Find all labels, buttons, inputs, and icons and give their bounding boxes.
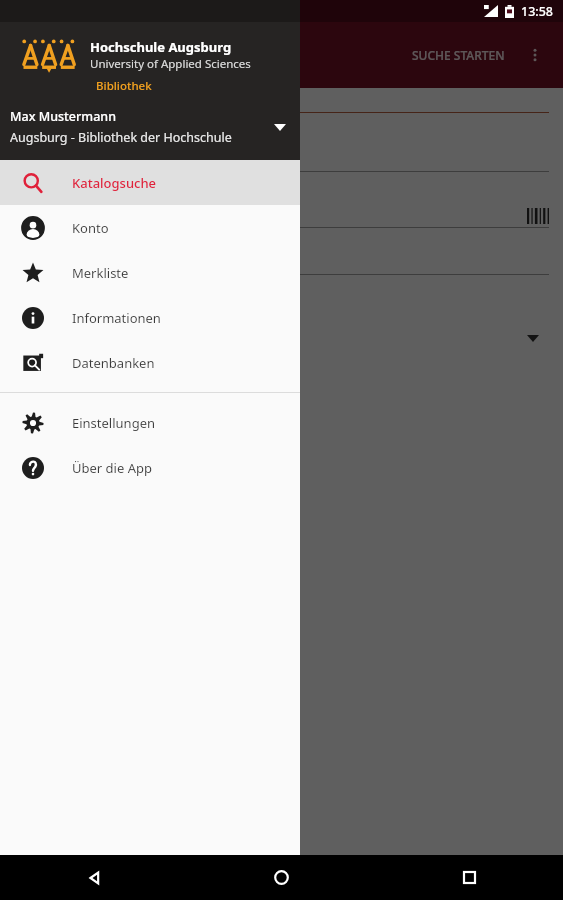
button[interactable]: Back [0, 855, 187, 900]
staticText: Informationen [72, 309, 161, 327]
button[interactable]: Einstellungen [0, 400, 300, 445]
button[interactable]: SUCHE STARTEN [402, 39, 515, 71]
button[interactable]: Merkliste [0, 250, 300, 295]
staticText: Max Mustermann [10, 108, 116, 125]
staticText: University of Applied Sciences [90, 56, 251, 72]
staticText: Bibliothek der Hochschule Augsburg [12, 59, 201, 74]
staticText: Einstellungen [72, 414, 156, 432]
staticText: Datenbanken [72, 354, 155, 372]
staticText: Katalogsuche [72, 174, 157, 192]
button[interactable]: More options [515, 35, 555, 75]
staticText: Konto [72, 219, 109, 237]
staticText: Bibliothek [96, 78, 152, 94]
button[interactable]: Datenbanken [0, 340, 300, 385]
staticText: Hochschule Augsburg [12, 37, 170, 57]
button[interactable]: Konto [0, 205, 300, 250]
button[interactable]: Katalogsuche [0, 160, 300, 205]
button[interactable]: Max Mustermann [0, 104, 300, 160]
staticText: SUCHE STARTEN [412, 47, 505, 63]
button[interactable]: Über die App [0, 445, 300, 490]
button[interactable]: Informationen [0, 295, 300, 340]
staticText: Hochschule Augsburg [90, 38, 232, 56]
staticText: Augsburg - Bibliothek der Hochschule [10, 129, 232, 146]
button[interactable]: Recents [375, 855, 563, 900]
button[interactable]: Home [187, 855, 375, 900]
staticText: 13:58 [521, 3, 554, 20]
staticText: Merkliste [72, 264, 129, 282]
staticText: Über die App [72, 459, 152, 477]
